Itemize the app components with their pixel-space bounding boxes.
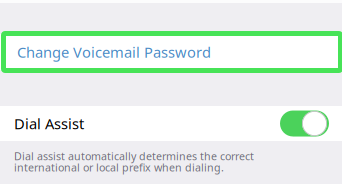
staticText: international or local prefix when diali… [14, 160, 224, 174]
staticText: Dial assist automatically determines the… [14, 149, 254, 163]
button[interactable]: Dial Assist [0, 106, 342, 141]
button[interactable]: Change Voicemail Password [0, 34, 342, 70]
staticText: Change Voicemail Password [17, 42, 211, 62]
staticText: Dial Assist [14, 114, 84, 133]
